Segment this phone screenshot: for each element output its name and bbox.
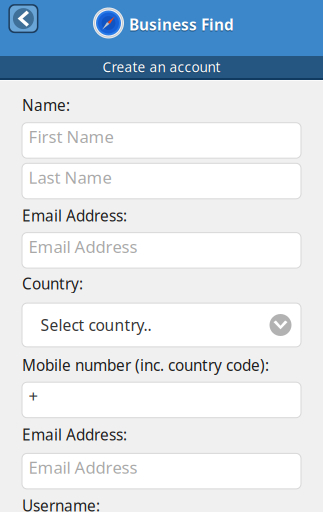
button[interactable]: Select country: [22, 303, 301, 347]
staticText: Email Address: [28, 235, 137, 258]
staticText: Business Find: [129, 14, 234, 35]
button[interactable]: First Name: [22, 123, 301, 158]
button[interactable]: Create an account: [0, 56, 323, 78]
staticText: Last Name: [28, 166, 111, 189]
button[interactable]: Email Address: [22, 453, 301, 489]
staticText: Create an account: [102, 59, 220, 77]
staticText: Email Address:: [22, 205, 127, 226]
staticText: Country:: [22, 273, 83, 294]
staticText: Mobile number (inc. country code):: [22, 355, 269, 375]
button[interactable]: Back: [8, 4, 38, 33]
staticText: Email Address:: [22, 424, 127, 445]
staticText: Email Address: [28, 456, 137, 479]
staticText: Username:: [22, 495, 100, 512]
staticText: Select country..: [40, 314, 151, 336]
button[interactable]: Last Name: [22, 163, 301, 199]
staticText: First Name: [28, 125, 113, 148]
staticText: +: [28, 385, 38, 407]
button[interactable]: +: [22, 382, 301, 418]
staticText: Create an account: [102, 58, 220, 76]
button[interactable]: Email Address: [22, 233, 301, 268]
staticText: Business Find: [129, 15, 234, 36]
staticText: Name:: [22, 95, 70, 115]
